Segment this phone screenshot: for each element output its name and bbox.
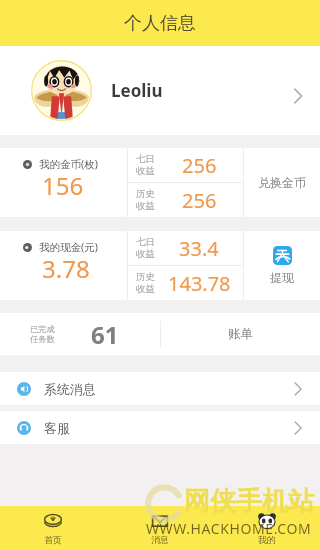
staticText: 提现 (270, 270, 294, 285)
button[interactable]: 已完成 (0, 313, 160, 355)
staticText: 我的金币(枚) (39, 157, 98, 171)
staticText: 个人信息 (124, 12, 196, 35)
staticText: 客服 (44, 420, 70, 436)
staticText: 收益 (136, 165, 155, 177)
staticText: 61 (91, 318, 119, 351)
button[interactable]: Leoliu (0, 46, 320, 135)
staticText: 我的现金(元) (39, 240, 98, 254)
staticText: 143.78 (168, 270, 231, 297)
staticText: 33.4 (179, 235, 219, 262)
button[interactable]: 提现 (244, 231, 320, 300)
staticText: 3.78 (42, 252, 90, 285)
staticText: 消息 (151, 534, 169, 545)
button[interactable]: 客服 (0, 411, 320, 444)
staticText: 任务数 (30, 334, 55, 344)
staticText: 网侠手机站 (184, 485, 314, 518)
button[interactable]: 我的现金(元) (0, 231, 127, 300)
staticText: WWW.HACKHOME.COM (146, 519, 312, 538)
staticText: 收益 (136, 283, 155, 295)
staticText: 首页 (44, 534, 62, 545)
staticText: 七日 (136, 153, 155, 165)
staticText: 历史 (136, 271, 155, 283)
button[interactable]: 我的金币(枚) (0, 148, 127, 217)
button[interactable]: 兑换金币 (244, 148, 320, 217)
button[interactable]: 我的 (213, 506, 320, 550)
staticText: 256 (182, 152, 217, 179)
staticText: 256 (182, 187, 217, 214)
staticText: 已完成 (30, 324, 55, 334)
staticText: Leoliu (111, 79, 163, 102)
button[interactable]: 消息 (106, 506, 213, 550)
staticText: 七日 (136, 236, 155, 248)
staticText: 我的 (258, 534, 276, 545)
button[interactable]: 账单 (161, 313, 320, 355)
button[interactable]: 首页 (0, 506, 106, 550)
staticText: 兑换金币 (258, 175, 306, 190)
staticText: 历史 (136, 188, 155, 200)
staticText: 账单 (228, 326, 253, 342)
staticText: 系统消息 (44, 381, 96, 397)
staticText: 收益 (136, 248, 155, 260)
staticText: 收益 (136, 200, 155, 212)
button[interactable]: 系统消息 (0, 372, 320, 405)
staticText: 156 (42, 169, 84, 202)
